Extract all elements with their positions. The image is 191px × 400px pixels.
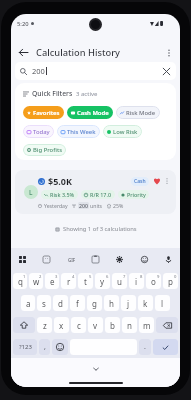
button[interactable]: p	[163, 273, 178, 289]
staticText: Today	[33, 128, 50, 136]
button[interactable]: l	[155, 295, 170, 311]
button[interactable]: Stickers	[41, 254, 52, 265]
button[interactable]: $5.0K	[15, 170, 176, 214]
staticText: Risk 3.5%	[50, 191, 75, 198]
button[interactable]: Favorites	[23, 106, 64, 119]
button[interactable]: Risk 3.5%	[41, 190, 78, 199]
button[interactable]: Cash Mode	[67, 106, 113, 119]
button[interactable]: o	[146, 273, 161, 289]
button[interactable]: Voice input	[163, 254, 174, 265]
button[interactable]: d	[53, 295, 68, 311]
button[interactable]: j	[121, 295, 136, 311]
button[interactable]: App grid	[17, 254, 28, 265]
button[interactable]: s	[37, 295, 51, 311]
button[interactable]: Low Risk	[103, 125, 142, 138]
button[interactable]: ?123	[13, 339, 37, 355]
staticText: .	[144, 342, 146, 352]
button[interactable]: b	[105, 317, 120, 333]
staticText: This Week	[67, 128, 96, 136]
button[interactable]: Priority	[118, 190, 149, 199]
staticText: m	[143, 320, 151, 331]
button[interactable]: y	[95, 273, 110, 289]
button[interactable]: Cash	[131, 177, 149, 186]
staticText: Big Profits	[33, 146, 62, 154]
staticText: s	[42, 298, 46, 309]
button[interactable]: v	[88, 317, 103, 333]
staticText: x	[59, 320, 64, 331]
button[interactable]: GIF	[66, 254, 77, 265]
button[interactable]: m	[139, 317, 154, 333]
button[interactable]: Emoji	[52, 339, 68, 355]
button[interactable]: z	[37, 317, 52, 333]
staticText: 6	[106, 274, 109, 280]
button[interactable]: t	[78, 273, 93, 289]
button[interactable]: Comma	[39, 339, 50, 355]
button[interactable]: Settings	[114, 254, 125, 265]
staticText: Cash	[134, 178, 146, 185]
staticText: a	[26, 298, 31, 309]
staticText: 2	[39, 274, 42, 280]
staticText: y	[100, 276, 105, 287]
button[interactable]: Back	[16, 45, 30, 59]
button[interactable]: Shift	[13, 317, 35, 333]
staticText: k	[143, 298, 148, 309]
staticText: l	[161, 298, 164, 309]
button[interactable]: w	[29, 273, 43, 289]
button[interactable]: Favorite	[152, 176, 162, 186]
button[interactable]: e	[45, 273, 59, 289]
button[interactable]: Risk Mode	[116, 106, 160, 119]
button[interactable]: R/R 17.0	[81, 190, 115, 199]
staticText: ,	[44, 342, 46, 352]
staticText: Yesterday	[44, 202, 68, 209]
staticText: t	[84, 276, 87, 287]
button[interactable]: a	[21, 295, 35, 311]
button[interactable]: More options	[162, 46, 175, 59]
button[interactable]: h	[104, 295, 119, 311]
staticText: 3	[55, 274, 58, 280]
staticText: 1	[23, 274, 26, 280]
button[interactable]: f	[70, 295, 85, 311]
staticText: j	[127, 298, 130, 309]
staticText: L	[29, 188, 33, 197]
staticText: 4	[72, 274, 75, 280]
button[interactable]: This Week	[57, 125, 100, 138]
button[interactable]: r	[61, 273, 76, 289]
staticText: $5.0K	[48, 175, 72, 187]
button[interactable]: g	[87, 295, 102, 311]
button[interactable]: Today	[23, 125, 54, 138]
staticText: d	[58, 298, 63, 309]
staticText: q	[18, 276, 23, 287]
staticText: 25%	[113, 202, 124, 209]
button[interactable]: n	[122, 317, 137, 333]
button[interactable]: Clipboard	[90, 254, 101, 265]
button[interactable]: Emoji	[139, 254, 150, 265]
button[interactable]: k	[138, 295, 153, 311]
staticText: g	[92, 298, 97, 309]
staticText: 200	[79, 202, 88, 209]
staticText: h	[109, 298, 114, 309]
staticText: 7	[123, 274, 126, 280]
button[interactable]: u	[112, 273, 127, 289]
button[interactable]: 200	[15, 62, 176, 80]
button[interactable]: c	[71, 317, 86, 333]
staticText: p	[168, 276, 173, 287]
staticText: c	[77, 320, 81, 331]
button[interactable]: Clear search	[161, 66, 172, 77]
button[interactable]: Enter	[153, 339, 178, 355]
button[interactable]: Item options	[163, 177, 171, 185]
staticText: R/R 17.0	[90, 191, 112, 198]
button[interactable]: x	[54, 317, 69, 333]
button[interactable]: Big Profits	[23, 144, 66, 156]
button[interactable]: Backspace	[156, 317, 178, 333]
staticText: v	[93, 320, 98, 331]
staticText: e	[50, 276, 55, 287]
button[interactable]: Hide keyboard	[91, 364, 101, 374]
staticText: 9	[157, 274, 160, 280]
staticText: Favorites	[33, 109, 60, 117]
staticText: 5:20	[17, 20, 29, 28]
staticText: Calculation History	[36, 46, 121, 59]
button[interactable]: q	[13, 273, 27, 289]
button[interactable]: i	[129, 273, 144, 289]
button[interactable]: Period	[139, 339, 151, 355]
